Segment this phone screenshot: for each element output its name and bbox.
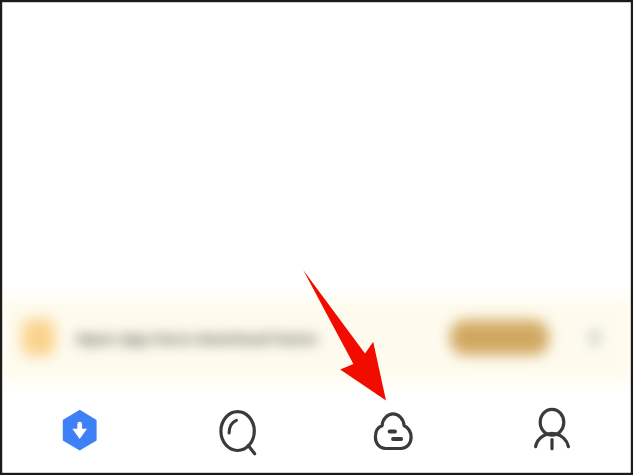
button[interactable]: Profile (498, 392, 605, 470)
button[interactable]: Downloads (26, 392, 134, 470)
staticText: Open App Store download faster (76, 328, 319, 348)
button[interactable]: Search (185, 392, 292, 470)
button[interactable]: Cloud (342, 392, 449, 470)
